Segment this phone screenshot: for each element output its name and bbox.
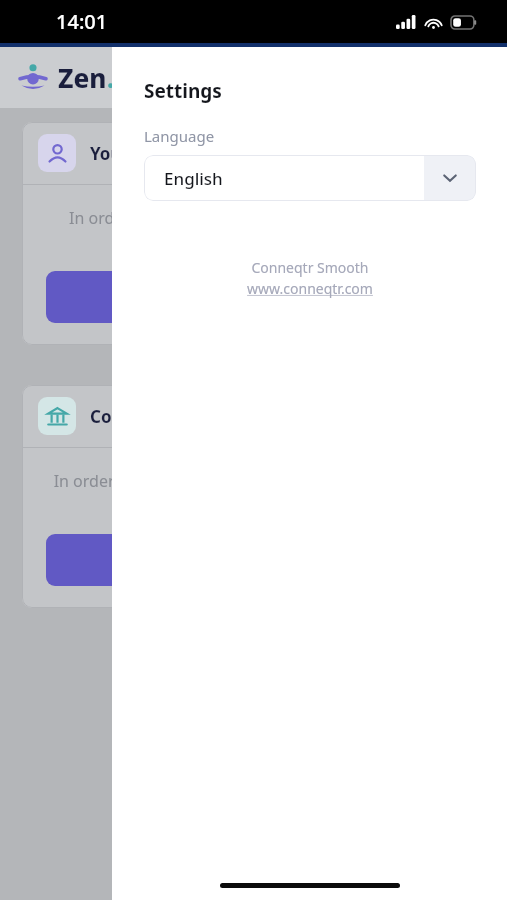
staticText: English — [164, 167, 424, 190]
staticText: 14:01 — [56, 8, 108, 35]
button[interactable]: Open language list — [424, 155, 476, 201]
button[interactable] — [46, 534, 461, 586]
staticText: In order to continue please connect your… — [46, 470, 461, 514]
staticText: Connect bank — [90, 405, 207, 428]
button[interactable]: Your profile — [22, 122, 485, 345]
button[interactable] — [46, 271, 461, 323]
staticText: In order to continue please complete you… — [46, 207, 461, 251]
button[interactable]: www.conneqtr.com — [247, 279, 373, 298]
staticText: Your profile — [90, 142, 189, 165]
button[interactable]: Connect bank — [22, 385, 485, 608]
staticText: Zen — [58, 60, 107, 95]
staticText: Language — [144, 126, 215, 146]
staticText: . — [107, 60, 115, 95]
staticText: Conneqtr Smooth — [251, 258, 369, 277]
staticText: Settings — [144, 78, 222, 104]
button[interactable]: English — [144, 155, 476, 201]
